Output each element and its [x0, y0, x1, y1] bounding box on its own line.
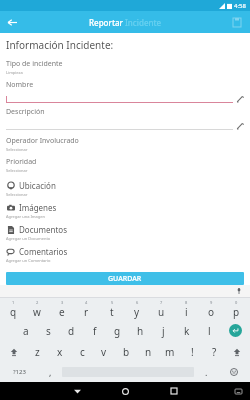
button[interactable]: h — [129, 320, 152, 341]
staticText: 5 — [111, 300, 114, 305]
button[interactable]: Voice input — [234, 286, 244, 296]
staticText: s — [46, 324, 51, 338]
staticText: 0 — [235, 300, 238, 305]
button[interactable]: Edit — [6, 95, 244, 103]
button[interactable]: g — [106, 320, 129, 341]
button[interactable]: Home — [118, 384, 132, 398]
staticText: e — [59, 305, 65, 319]
staticText: Agregar un Documento — [6, 236, 51, 241]
staticText: 1 — [12, 300, 15, 305]
staticText: r — [84, 305, 89, 319]
staticText: Prioridad — [6, 157, 37, 167]
staticText: y — [134, 305, 140, 319]
button[interactable]: 6 — [124, 298, 149, 320]
staticText: j — [162, 324, 165, 338]
button[interactable]: 1 — [1, 298, 25, 320]
button[interactable]: l — [198, 320, 221, 341]
staticText: g — [114, 324, 121, 338]
button[interactable]: . — [194, 362, 218, 382]
staticText: Documentos — [19, 224, 67, 235]
button[interactable]: d — [60, 320, 83, 341]
staticText: Nombre — [6, 80, 34, 90]
staticText: 4 — [85, 300, 88, 305]
button[interactable]: Backspace — [225, 341, 249, 362]
staticText: 9 — [210, 300, 213, 305]
button[interactable]: Emoji — [218, 362, 249, 382]
staticText: Limpieza — [6, 70, 23, 75]
staticText: Ubicación — [19, 180, 56, 191]
staticText: d — [68, 324, 75, 338]
button[interactable]: n — [137, 341, 159, 362]
button[interactable]: v — [93, 341, 115, 362]
staticText: o — [208, 305, 215, 319]
button[interactable]: Hide keyboard — [232, 385, 244, 397]
button[interactable]: 9 — [199, 298, 224, 320]
staticText: Seleccionar — [6, 168, 28, 173]
staticText: Información Incidente: — [6, 38, 114, 52]
button[interactable]: 8 — [174, 298, 199, 320]
button[interactable]: Back — [70, 384, 84, 398]
button[interactable]: a — [14, 320, 37, 341]
button[interactable]: 5 — [99, 298, 124, 320]
button[interactable]: 2 — [25, 298, 49, 320]
staticText: l — [208, 324, 211, 338]
staticText: c — [80, 345, 85, 359]
button[interactable]: Edit — [6, 122, 244, 130]
other: Edit — [236, 95, 244, 103]
button[interactable]: s — [37, 320, 60, 341]
staticText: Descripción — [6, 107, 45, 117]
button[interactable]: Recents — [167, 384, 181, 398]
staticText: 2 — [36, 300, 39, 305]
button[interactable]: 4 — [74, 298, 99, 320]
button[interactable]: , — [38, 362, 62, 382]
button[interactable]: Comentarios — [6, 246, 244, 263]
staticText: f — [93, 324, 97, 338]
button[interactable]: Prioridad — [6, 157, 244, 173]
button[interactable]: Ubicación — [6, 180, 244, 197]
staticText: Seleccionar — [6, 147, 28, 152]
button[interactable]: j — [152, 320, 175, 341]
staticText: Operador Involucrado — [6, 136, 79, 146]
button[interactable]: ! — [181, 341, 203, 362]
button[interactable]: ?123 — [1, 362, 38, 382]
button[interactable]: f — [83, 320, 106, 341]
staticText: ?123 — [13, 368, 26, 376]
staticText: x — [57, 345, 63, 359]
button[interactable]: x — [49, 341, 71, 362]
button[interactable]: Shift — [1, 341, 26, 362]
staticText: Agregar un Comentario — [6, 258, 51, 263]
staticText: w — [33, 305, 41, 319]
button[interactable]: b — [115, 341, 137, 362]
staticText: n — [145, 345, 152, 359]
button[interactable]: Operador Involucrado — [6, 136, 244, 152]
staticText: u — [158, 305, 165, 319]
button[interactable]: 3 — [49, 298, 74, 320]
button[interactable]: Documentos — [6, 224, 244, 241]
staticText: k — [184, 324, 190, 338]
button[interactable]: Enter — [221, 320, 249, 341]
button[interactable]: Back — [4, 14, 20, 30]
staticText: v — [101, 345, 107, 359]
button[interactable]: ? — [203, 341, 225, 362]
button[interactable]: z — [26, 341, 49, 362]
staticText: ? — [212, 345, 217, 359]
other: Edit — [236, 122, 244, 130]
button[interactable]: 0 — [224, 298, 249, 320]
button[interactable]: m — [159, 341, 181, 362]
staticText: Tipo de incidente — [6, 59, 63, 69]
staticText: t — [110, 305, 114, 319]
button[interactable]: 7 — [149, 298, 174, 320]
staticText: 4:58 — [234, 2, 246, 10]
button[interactable]: Tipo de incidente — [6, 59, 244, 75]
button[interactable]: Imágenes — [6, 202, 244, 219]
button[interactable]: c — [71, 341, 93, 362]
staticText: 3 — [61, 300, 64, 305]
staticText: 8 — [185, 300, 188, 305]
button[interactable]: k — [175, 320, 198, 341]
button[interactable]: GUARDAR — [6, 272, 244, 285]
staticText: Incidente — [125, 17, 162, 28]
staticText: 6 — [136, 300, 139, 305]
staticText: a — [23, 324, 29, 338]
button[interactable]: Save — [229, 14, 245, 30]
